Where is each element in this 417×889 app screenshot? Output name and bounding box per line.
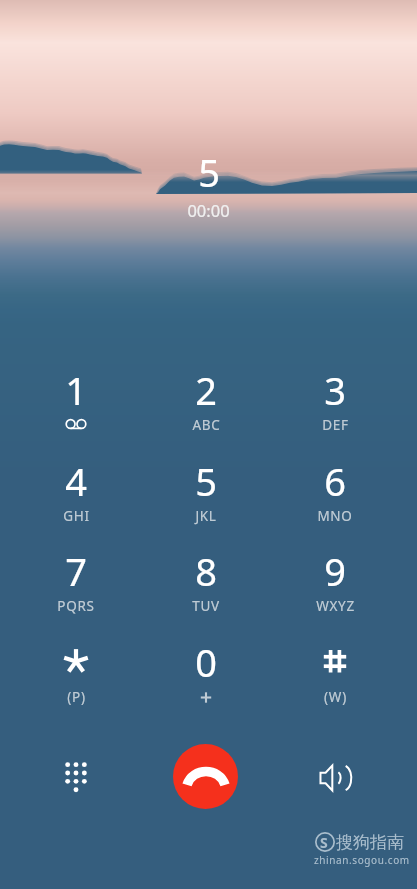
staticText: 3 [324,364,346,408]
staticText: S [320,833,328,852]
button[interactable]: Speaker [304,746,368,810]
button[interactable]: 5 [151,455,261,531]
button[interactable]: Show dialpad [44,741,108,805]
staticText: 0 [195,636,217,680]
staticText: MNO [317,507,353,525]
staticText: TUV [192,597,220,615]
staticText: 8 [195,545,217,589]
button[interactable]: End call [173,744,238,809]
staticText: (W) [324,688,347,706]
button[interactable]: 3 [280,364,390,440]
staticText: 5 [195,455,217,499]
staticText: 搜狗指南 [336,832,404,853]
button[interactable]: 4 [21,455,131,531]
staticText: 7 [65,545,87,589]
staticText: WXYZ [316,597,355,615]
staticText: 5 [198,146,220,198]
button[interactable]: 9 [280,545,390,621]
staticText: DEF [322,416,349,434]
staticText: 1 [65,364,87,408]
button[interactable]: 6 [280,455,390,531]
staticText: GHI [63,507,90,525]
button[interactable]: 1 [21,364,131,440]
staticText: 00:00 [187,199,230,221]
staticText: ABC [192,416,221,434]
button[interactable]: 8 [151,545,261,621]
button[interactable]: (P) [21,636,131,712]
staticText: JKL [195,507,217,525]
staticText: 6 [324,455,346,499]
staticText: 4 [65,455,87,499]
staticText: 2 [195,364,217,408]
button[interactable]: 0 [151,636,261,712]
staticText: 9 [324,545,346,589]
staticText: (P) [67,688,86,706]
button[interactable]: 2 [151,364,261,440]
staticText: PQRS [57,597,95,615]
staticText: zhinan.sogou.com [314,853,410,867]
button[interactable]: (W) [280,636,390,712]
button[interactable]: 7 [21,545,131,621]
